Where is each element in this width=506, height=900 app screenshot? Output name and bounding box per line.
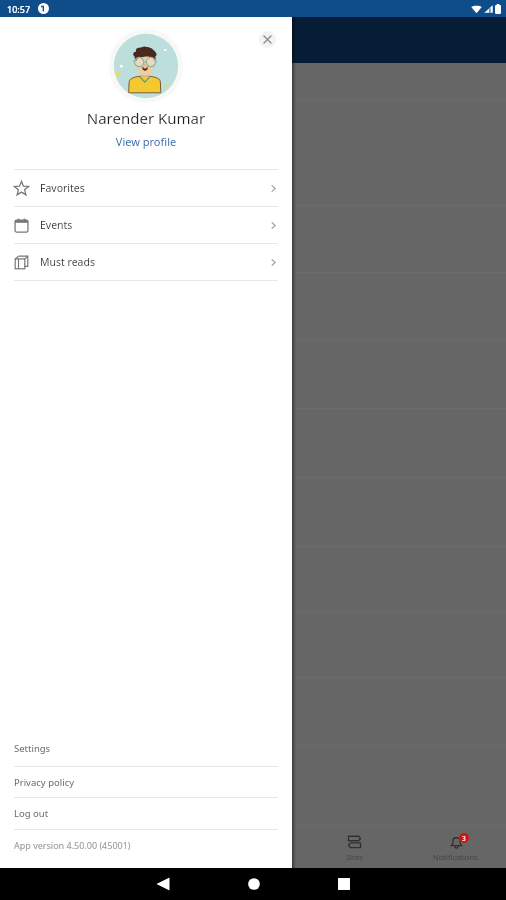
staticText: Favorites [40, 181, 85, 195]
staticText: Notifications [433, 852, 478, 862]
button[interactable]: Must reads [0, 244, 292, 280]
button[interactable]: Favorites [0, 170, 292, 206]
staticText: Privacy policy [14, 776, 75, 789]
staticText: 10:57 [7, 3, 31, 15]
button[interactable]: Recents [331, 871, 357, 897]
staticText: Events [40, 218, 73, 232]
staticText: Log out [14, 807, 49, 820]
button[interactable]: 3 [405, 825, 506, 868]
staticText: Sites [346, 852, 363, 862]
button[interactable]: Home [241, 871, 267, 897]
staticText: Settings [14, 742, 51, 755]
staticText: App version 4.50.00 (45001) [14, 839, 131, 851]
button[interactable]: Events [0, 207, 292, 243]
button[interactable]: Sites [304, 825, 405, 868]
button[interactable]: Back [150, 871, 176, 897]
staticText: Narender Kumar [0, 108, 292, 128]
button[interactable]: Log out [0, 798, 292, 829]
button[interactable]: Settings [0, 730, 292, 766]
staticText: 3 [462, 834, 466, 843]
staticText: Must reads [40, 255, 95, 269]
button[interactable]: Privacy policy [0, 767, 292, 797]
button[interactable]: View profile [0, 134, 292, 149]
button[interactable]: Close [259, 31, 276, 48]
